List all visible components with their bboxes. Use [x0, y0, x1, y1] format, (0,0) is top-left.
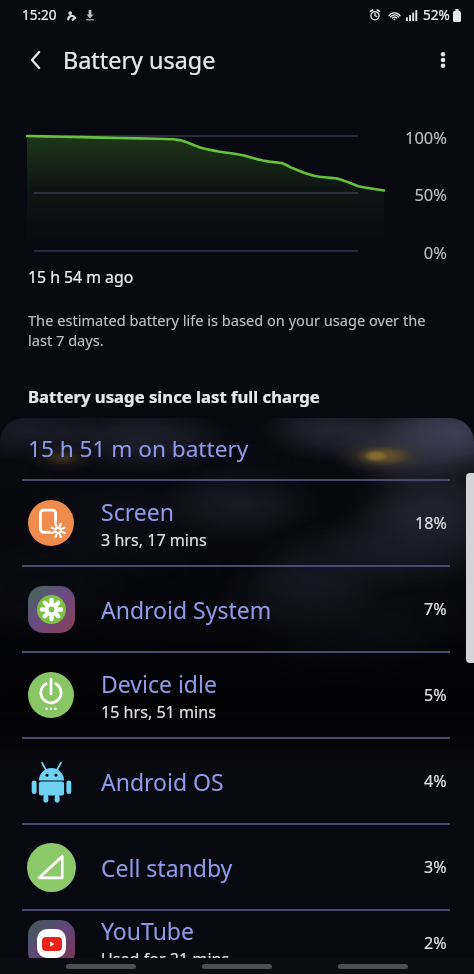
staticText: Battery usage [63, 44, 216, 76]
button[interactable]: Screen [0, 481, 474, 565]
staticText: 0% [387, 241, 447, 263]
staticText: 7% [424, 598, 447, 620]
staticText: 2% [424, 932, 447, 954]
staticText: 100% [387, 126, 447, 148]
button[interactable]: Device idle [0, 653, 474, 737]
staticText: Screen [101, 496, 174, 527]
staticText: Cell standby [101, 852, 233, 883]
staticText: 15 h 54 m ago [28, 266, 134, 288]
button[interactable]: More options [421, 38, 465, 82]
staticText: 3% [424, 856, 447, 878]
staticText: Device idle [101, 668, 217, 699]
button[interactable]: YouTube [0, 911, 474, 974]
button[interactable]: Cell standby [0, 825, 474, 909]
staticText: 52% [423, 6, 450, 24]
staticText: Android System [101, 594, 272, 625]
staticText: The estimated battery life is based on y… [28, 310, 432, 351]
staticText: Battery usage since last full charge [28, 385, 320, 408]
button[interactable]: Back [14, 38, 58, 82]
staticText: Android OS [101, 766, 224, 797]
staticText: YouTube [101, 915, 194, 946]
button[interactable]: Android OS [0, 739, 474, 823]
button[interactable]: Android System [0, 567, 474, 651]
staticText: 15:20 [22, 6, 57, 24]
staticText: 50% [387, 183, 447, 205]
staticText: 3 hrs, 17 mins [101, 529, 207, 551]
staticText: 15 hrs, 51 mins [101, 701, 216, 723]
staticText: Used for 21 mins [101, 948, 230, 970]
staticText: 5% [424, 684, 447, 706]
staticText: 15 h 51 m on battery [28, 433, 249, 464]
staticText: 18% [415, 512, 447, 534]
staticText: 4% [424, 770, 447, 792]
